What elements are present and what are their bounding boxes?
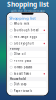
button[interactable]: Sourdough bread	[8, 27, 46, 34]
button[interactable]: Olive oil	[8, 51, 46, 57]
staticText: Sea salt flakes	[14, 72, 31, 75]
staticText: Whole milk	[14, 22, 29, 25]
staticText: with the Reminders app	[11, 9, 45, 13]
button[interactable]: Penne pasta	[8, 57, 46, 64]
staticText: Dish soap	[14, 82, 27, 86]
staticText: Household	[10, 77, 26, 81]
staticText: Paper towels	[14, 89, 32, 93]
staticText: Free-range eggs	[14, 35, 37, 39]
button[interactable]: Shopping list	[7, 16, 48, 21]
staticText: Olive oil	[14, 52, 26, 56]
staticText: Penne pasta	[14, 59, 31, 62]
staticText: Sourdough bread	[14, 28, 39, 32]
staticText: Greek yoghurt	[14, 42, 34, 45]
button[interactable]: Sea salt flakes	[8, 71, 46, 77]
staticText: Shopping list	[9, 16, 36, 21]
button[interactable]: Tomato passata	[8, 64, 46, 71]
button[interactable]: Greek yoghurt	[8, 40, 46, 47]
button[interactable]: Dish soap	[8, 81, 46, 88]
button[interactable]: Whole milk	[8, 21, 46, 27]
staticText: Pantry	[10, 47, 19, 50]
button[interactable]: Free-range eggs	[8, 34, 46, 40]
staticText: Tomato passata	[14, 65, 32, 69]
button[interactable]: Paper towels	[8, 88, 46, 94]
staticText: Shopping list	[7, 0, 49, 9]
